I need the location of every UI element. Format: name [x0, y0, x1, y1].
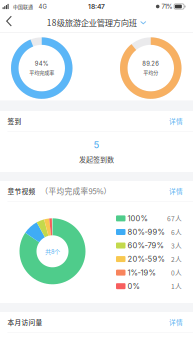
staticText: 5	[93, 139, 99, 151]
button[interactable]: 详情	[163, 312, 183, 332]
staticText: 1%-19%	[127, 268, 155, 277]
staticText: 共8个	[45, 247, 60, 256]
staticText: 详情	[169, 116, 183, 126]
staticText: 18级旅游企业管理方向班	[47, 16, 137, 28]
staticText: 3人	[171, 241, 182, 250]
staticText: 发起签到数	[79, 154, 114, 164]
staticText: 18:47	[88, 2, 105, 11]
staticText: 签到	[7, 116, 21, 126]
staticText: 94%	[35, 60, 49, 67]
staticText: 20%-59%	[127, 254, 164, 264]
staticText: 平均完成率	[29, 69, 54, 76]
staticText: 0%	[127, 282, 139, 291]
staticText: 80%-99%	[127, 227, 164, 237]
staticText: （平均完成率95%）	[40, 185, 111, 196]
button[interactable]: 详情	[163, 111, 183, 131]
staticText: 71%	[161, 3, 172, 10]
button[interactable]: 详情	[163, 181, 183, 201]
staticText: 平均分	[143, 69, 158, 76]
staticText: 章节视频	[7, 186, 35, 196]
button[interactable]: 返回	[0, 13, 18, 32]
staticText: 中国联通	[13, 3, 33, 10]
staticText: 详情	[169, 317, 183, 327]
staticText: 100%	[127, 214, 147, 223]
staticText: 89.26	[142, 60, 159, 67]
staticText: 60%-79%	[127, 241, 163, 250]
staticText: 0人	[171, 268, 182, 277]
staticText: 6人	[171, 227, 182, 237]
staticText: 本月访问量	[7, 317, 42, 327]
staticText: 1人	[171, 281, 182, 291]
staticText: 详情	[169, 186, 183, 196]
staticText: 67人	[167, 214, 182, 223]
staticText: 2人	[171, 254, 182, 264]
staticText: 4G	[38, 3, 46, 10]
